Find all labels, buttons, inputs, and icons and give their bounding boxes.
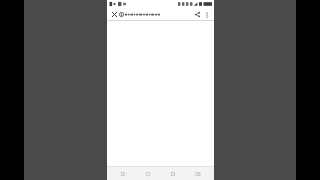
button[interactable]: More options: [202, 10, 211, 19]
button[interactable]: Home: [139, 167, 157, 180]
button[interactable]: [119, 9, 193, 19]
button[interactable]: Menu: [114, 167, 132, 180]
button[interactable]: Recents: [189, 167, 207, 180]
button[interactable]: Close: [110, 10, 118, 18]
button[interactable]: Back: [164, 167, 182, 180]
button[interactable]: Share: [193, 10, 202, 19]
